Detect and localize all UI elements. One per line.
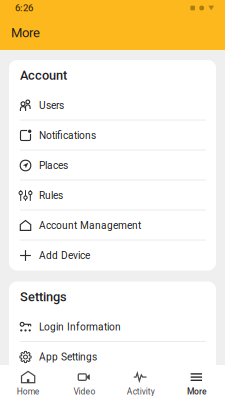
staticText: Users: [39, 100, 64, 111]
staticText: Rules: [39, 190, 63, 201]
staticText: Home: [17, 386, 40, 396]
staticText: Settings: [20, 289, 67, 304]
staticText: Activity: [127, 386, 155, 396]
staticText: Account: [20, 68, 67, 83]
staticText: Account Management: [39, 220, 141, 231]
staticText: Add Device: [39, 250, 90, 261]
staticText: Places: [39, 160, 68, 171]
button[interactable]: Login Information: [9, 312, 216, 342]
staticText: Notifications: [39, 130, 96, 141]
button[interactable]: Home: [0, 365, 56, 400]
staticText: App Settings: [39, 351, 97, 363]
button[interactable]: Rules: [9, 180, 216, 210]
button[interactable]: Video: [56, 365, 112, 400]
button[interactable]: Activity: [112, 365, 169, 400]
button[interactable]: Add Device: [9, 240, 216, 270]
button[interactable]: Places: [9, 150, 216, 180]
button[interactable]: Account Management: [9, 210, 216, 240]
button[interactable]: Users: [9, 90, 216, 120]
staticText: Login Information: [39, 321, 121, 333]
staticText: Video: [73, 386, 95, 396]
button[interactable]: Notifications: [9, 120, 216, 150]
button[interactable]: App Settings: [9, 342, 216, 372]
staticText: More: [11, 25, 40, 40]
staticText: More: [187, 386, 207, 396]
staticText: 6:26: [15, 2, 33, 14]
button[interactable]: More: [169, 365, 225, 400]
